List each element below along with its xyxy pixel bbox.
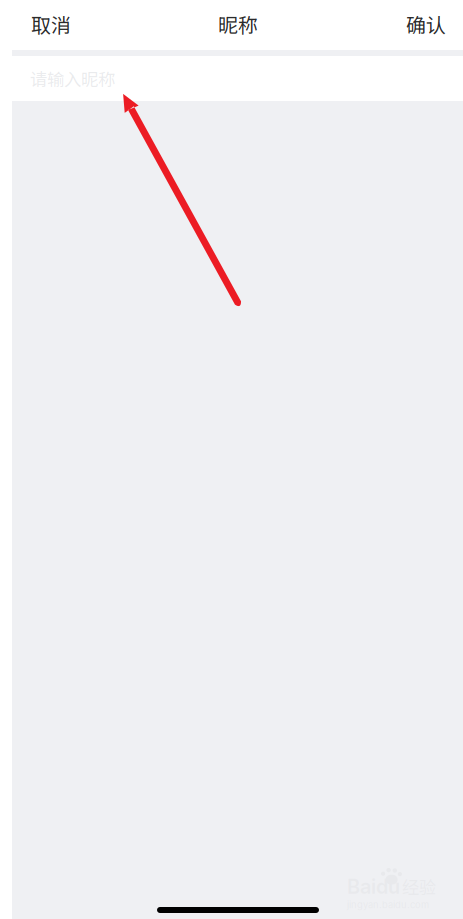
staticText: 请输入昵称 <box>30 66 115 91</box>
staticText: 昵称 <box>218 9 258 38</box>
button[interactable]: 取消 <box>0 0 87 50</box>
button[interactable]: 确认 <box>390 0 463 50</box>
staticText: 确认 <box>406 9 446 38</box>
staticText: 取消 <box>31 9 71 38</box>
button[interactable]: 请输入昵称 <box>0 56 463 101</box>
